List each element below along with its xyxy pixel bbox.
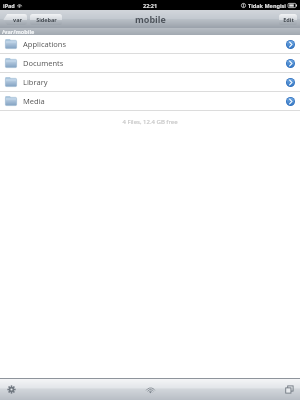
staticText: Edit [283,16,294,23]
button[interactable]: Copy [282,382,296,396]
staticText: Applications [23,39,286,49]
staticText: 22:21 [143,2,158,9]
staticText: iPad [3,2,15,9]
staticText: Documents [23,58,286,68]
staticText: mobile [135,13,166,25]
button[interactable]: Applications [0,35,300,53]
button[interactable]: Edit [279,14,297,25]
button[interactable]: Settings [4,382,18,396]
button[interactable]: Open Media details [286,97,295,106]
button[interactable]: var [3,14,27,25]
staticText: Tidak Mengisi [248,2,286,9]
button[interactable]: Open Applications details [286,40,295,49]
staticText: Library [23,77,286,87]
button[interactable]: Library [0,73,300,91]
button[interactable]: Open Library details [286,78,295,87]
button[interactable]: Sidebar [30,14,62,25]
staticText: /var/mobile [2,28,35,35]
button[interactable]: Media [0,92,300,110]
staticText: 4 Files, 12.4 GB free [0,118,300,126]
button[interactable]: Open Documents details [286,59,295,68]
staticText: var [13,16,22,23]
button[interactable]: Wi-Fi [143,382,157,396]
button[interactable]: Documents [0,54,300,72]
staticText: Sidebar [36,16,57,23]
staticText: Media [23,96,286,106]
